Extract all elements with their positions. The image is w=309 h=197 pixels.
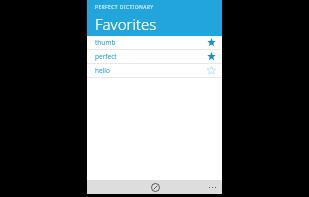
staticText: PERFECT DICTIONARY — [95, 4, 154, 11]
button[interactable]: More options — [206, 181, 218, 193]
button[interactable]: thumb — [87, 36, 222, 49]
staticText: hello — [95, 66, 110, 75]
button[interactable]: hello — [87, 64, 222, 77]
staticText: Favorites — [95, 14, 157, 34]
button[interactable]: perfect — [87, 50, 222, 63]
staticText: thumb — [95, 38, 116, 47]
staticText: perfect — [95, 52, 117, 61]
button[interactable]: Edit — [148, 180, 162, 194]
